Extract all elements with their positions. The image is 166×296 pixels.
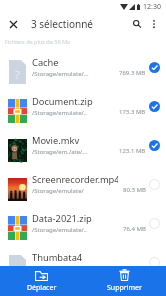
- staticText: ?: [15, 262, 20, 277]
- button[interactable]: More options: [146, 13, 162, 35]
- staticText: 76.4 MB: [123, 225, 146, 233]
- button[interactable]: Movie.mkv: [0, 125, 166, 164]
- staticText: /Storage/emulate/..: [32, 226, 87, 234]
- staticText: 173.3 MB: [119, 108, 146, 116]
- button[interactable]: Close: [0, 13, 26, 35]
- staticText: /Storage/emulate/: [32, 187, 84, 195]
- staticText: Fichiers de plus de 50 Mo: [5, 38, 71, 45]
- staticText: Supprimer: [107, 283, 142, 293]
- staticText: /Storage/em./ate/...: [32, 148, 88, 156]
- staticText: Thumbata4: [32, 251, 83, 264]
- button[interactable]: Déplacer: [0, 266, 83, 296]
- staticText: 123.1 MB: [119, 147, 146, 155]
- staticText: 60.1 MB: [123, 264, 146, 272]
- staticText: 12:30: [143, 2, 161, 12]
- staticText: 3 sélectionné: [31, 17, 94, 31]
- button[interactable]: Supprimer: [83, 266, 166, 296]
- button[interactable]: ?: [0, 242, 166, 281]
- staticText: /Storage/emulate/..: [32, 265, 87, 273]
- staticText: ?: [15, 67, 20, 82]
- button[interactable]: ?: [0, 47, 166, 86]
- button[interactable]: Search: [128, 13, 146, 35]
- staticText: Déplacer: [27, 283, 57, 293]
- staticText: Document.zip: [32, 95, 93, 108]
- staticText: 80.3 MB: [123, 186, 146, 194]
- button[interactable]: Document.zip: [0, 86, 166, 125]
- staticText: /Storage/emulate/...: [32, 70, 89, 78]
- staticText: Screenrecorder.mp4: [32, 173, 118, 186]
- staticText: Movie.mkv: [32, 134, 80, 147]
- staticText: Cache: [32, 56, 59, 69]
- staticText: /Storage/emulate/..: [32, 109, 87, 117]
- staticText: 769.3 MB: [119, 69, 146, 77]
- button[interactable]: Data-2021.zip: [0, 203, 166, 242]
- button[interactable]: Screenrecorder.mp4: [0, 164, 166, 203]
- staticText: Data-2021.zip: [32, 212, 92, 225]
